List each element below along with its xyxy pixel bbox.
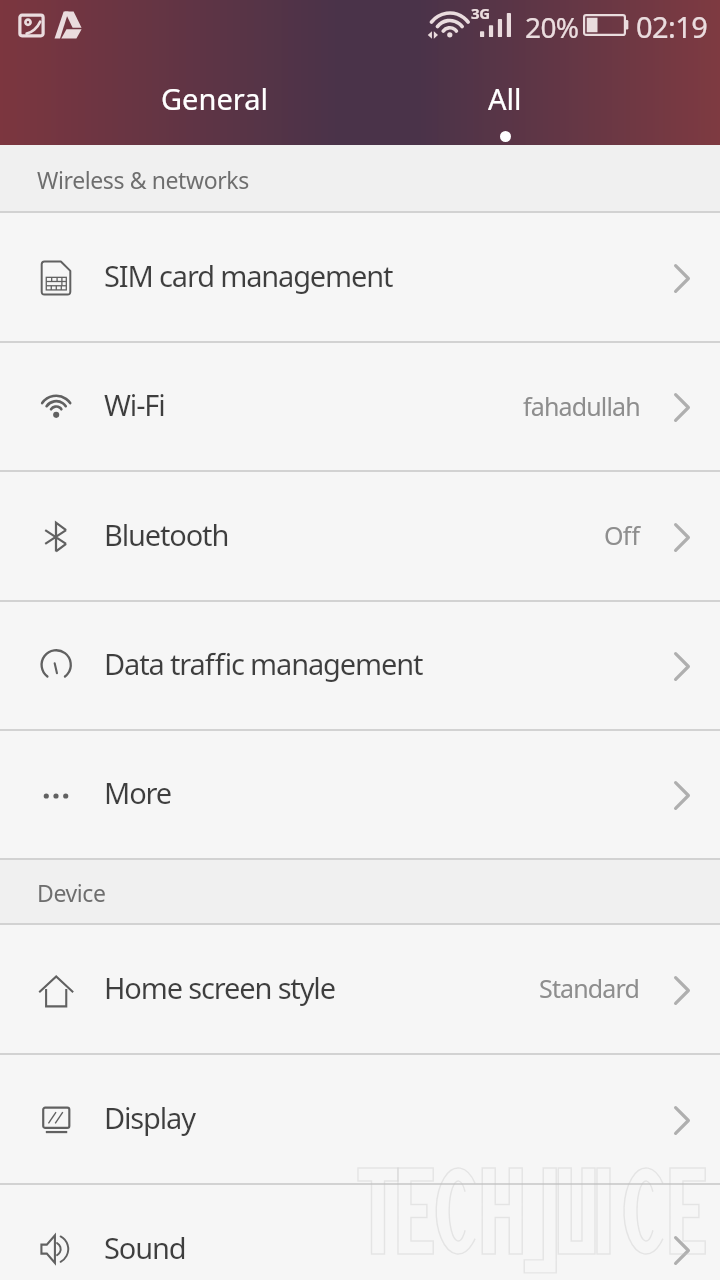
staticText: Display [104,1098,195,1137]
staticText: Standard [539,971,640,1005]
button[interactable]: Bluetooth [0,472,720,602]
staticText: Sound [104,1228,186,1267]
staticText: Data traffic management [104,644,423,683]
staticText: All [488,79,522,118]
staticText: fahadullah [523,389,640,423]
staticText: 3G [471,3,490,23]
staticText: More [104,773,172,812]
button[interactable]: Data traffic management [0,602,720,731]
button[interactable]: All [415,79,595,149]
staticText: Device [37,877,106,908]
staticText: Off [604,518,640,552]
button[interactable]: Wi-Fi [0,343,720,472]
staticText: Wireless & networks [37,164,249,195]
staticText: Wi-Fi [104,385,165,424]
staticText: 20% [525,8,579,46]
button[interactable]: Sound [0,1185,720,1280]
button[interactable]: More [0,731,720,860]
staticText: General [161,79,268,118]
button[interactable]: Display [0,1055,720,1185]
button[interactable]: General [124,79,304,149]
staticText: Home screen style [104,968,335,1007]
staticText: Bluetooth [104,515,229,554]
staticText: 02:19 [636,7,708,46]
button[interactable]: Home screen style [0,925,720,1055]
staticText: SIM card management [104,256,393,295]
button[interactable]: SIM card management [0,213,720,343]
